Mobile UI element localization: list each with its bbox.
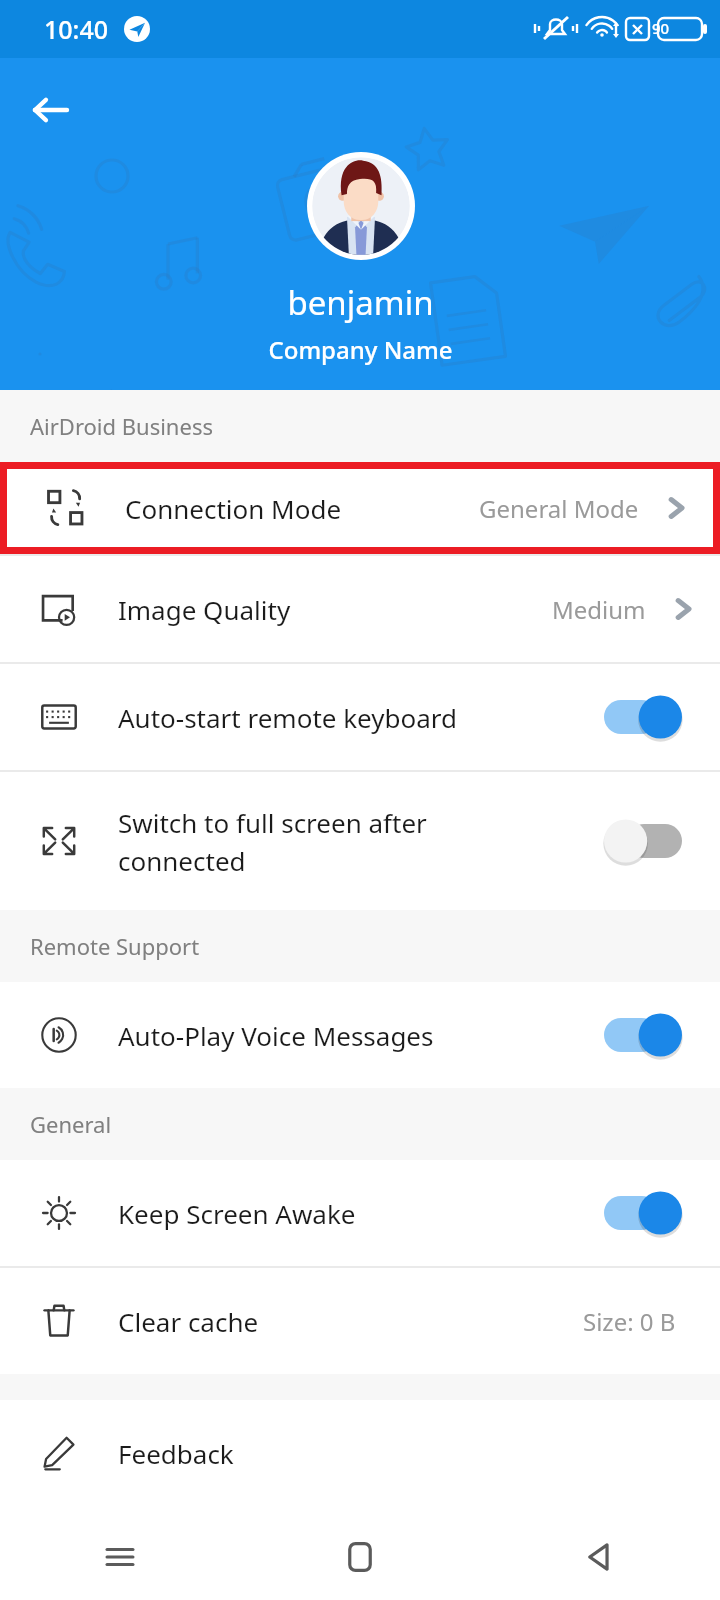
button[interactable]: Auto-start remote keyboard — [0, 664, 720, 770]
button[interactable]: Clear cache — [0, 1268, 720, 1374]
staticText: AirDroid Business — [30, 411, 213, 441]
staticText: Feedback — [118, 1436, 234, 1471]
staticText: General Mode — [479, 492, 639, 525]
button[interactable]: Recents — [0, 1514, 240, 1600]
staticText: Size: 0 B — [583, 1305, 676, 1338]
staticText: Auto-Play Voice Messages — [118, 1018, 580, 1053]
button[interactable]: Switch to full screen after connected — [0, 772, 720, 910]
button[interactable]: Feedback — [0, 1400, 720, 1506]
staticText: General — [30, 1109, 112, 1139]
staticText: 10:40 — [44, 12, 109, 46]
button[interactable]: Back — [20, 80, 80, 140]
button[interactable]: Home — [240, 1514, 480, 1600]
staticText: Image Quality — [118, 592, 291, 627]
button[interactable]: Keep Screen Awake — [0, 1160, 720, 1266]
staticText: Company Name — [268, 333, 453, 366]
staticText: Remote Support — [30, 931, 200, 961]
button[interactable]: Auto-Play Voice Messages — [0, 982, 720, 1088]
button[interactable]: Image Quality — [0, 556, 720, 662]
staticText: benjamin — [287, 280, 434, 325]
button[interactable] — [600, 689, 686, 745]
button[interactable] — [600, 1185, 686, 1241]
button[interactable]: Back — [480, 1514, 720, 1600]
button[interactable] — [600, 1007, 686, 1063]
staticText: Switch to full screen after connected — [118, 805, 580, 878]
staticText: 90 — [652, 18, 670, 38]
staticText: Keep Screen Awake — [118, 1196, 580, 1231]
staticText: Connection Mode — [125, 491, 342, 526]
staticText: Medium — [552, 593, 646, 626]
button[interactable] — [600, 813, 686, 869]
staticText: Clear cache — [118, 1304, 259, 1339]
button[interactable]: Connection Mode — [7, 469, 713, 547]
staticText: Auto-start remote keyboard — [118, 700, 580, 735]
